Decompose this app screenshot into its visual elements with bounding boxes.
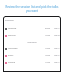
staticText: Hall A [54,47,60,50]
staticText: Panel [8,54,14,57]
staticText: Schedule [5,19,14,22]
button[interactable]: Workshop [3,45,61,52]
staticText: Opening [8,27,17,30]
staticText: 15:00 [45,54,51,57]
staticText: Hall A [54,61,60,64]
staticText: Closing [8,61,15,64]
staticText: Keynote [8,34,16,37]
staticText: Workshop [8,47,18,50]
button[interactable]: Closing [3,59,61,66]
staticText: 17:00 [45,61,51,64]
staticText: Review the session list and pick the tal… [3,5,61,13]
button[interactable]: Opening [3,25,61,32]
staticText: 13:00 [45,47,51,50]
button[interactable]: Panel [3,52,61,59]
staticText: Afternoon [3,41,61,44]
staticText: 09:00 [45,27,51,30]
staticText: 10:30 [45,34,51,37]
staticText: Hall A [54,27,60,30]
staticText: Hall B [54,34,60,37]
staticText: Hall C [54,54,60,57]
button[interactable]: Keynote [3,32,61,39]
